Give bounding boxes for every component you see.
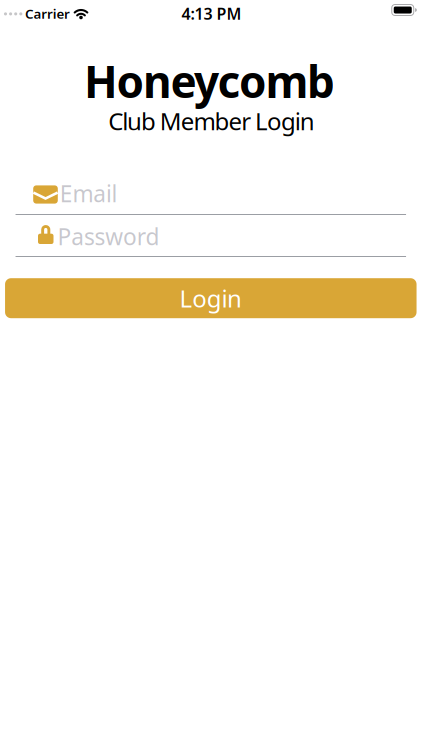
staticText: Honeycomb [84, 52, 335, 110]
button[interactable]: Login [5, 278, 417, 318]
button[interactable]: Email [0, 179, 422, 209]
staticText: Login [180, 282, 242, 314]
staticText: Carrier [25, 5, 70, 22]
button[interactable]: Password [0, 220, 422, 250]
staticText: Email [60, 178, 118, 208]
staticText: 4:13 PM [181, 3, 241, 24]
staticText: Password [57, 221, 159, 251]
staticText: Club Member Login [108, 105, 315, 137]
